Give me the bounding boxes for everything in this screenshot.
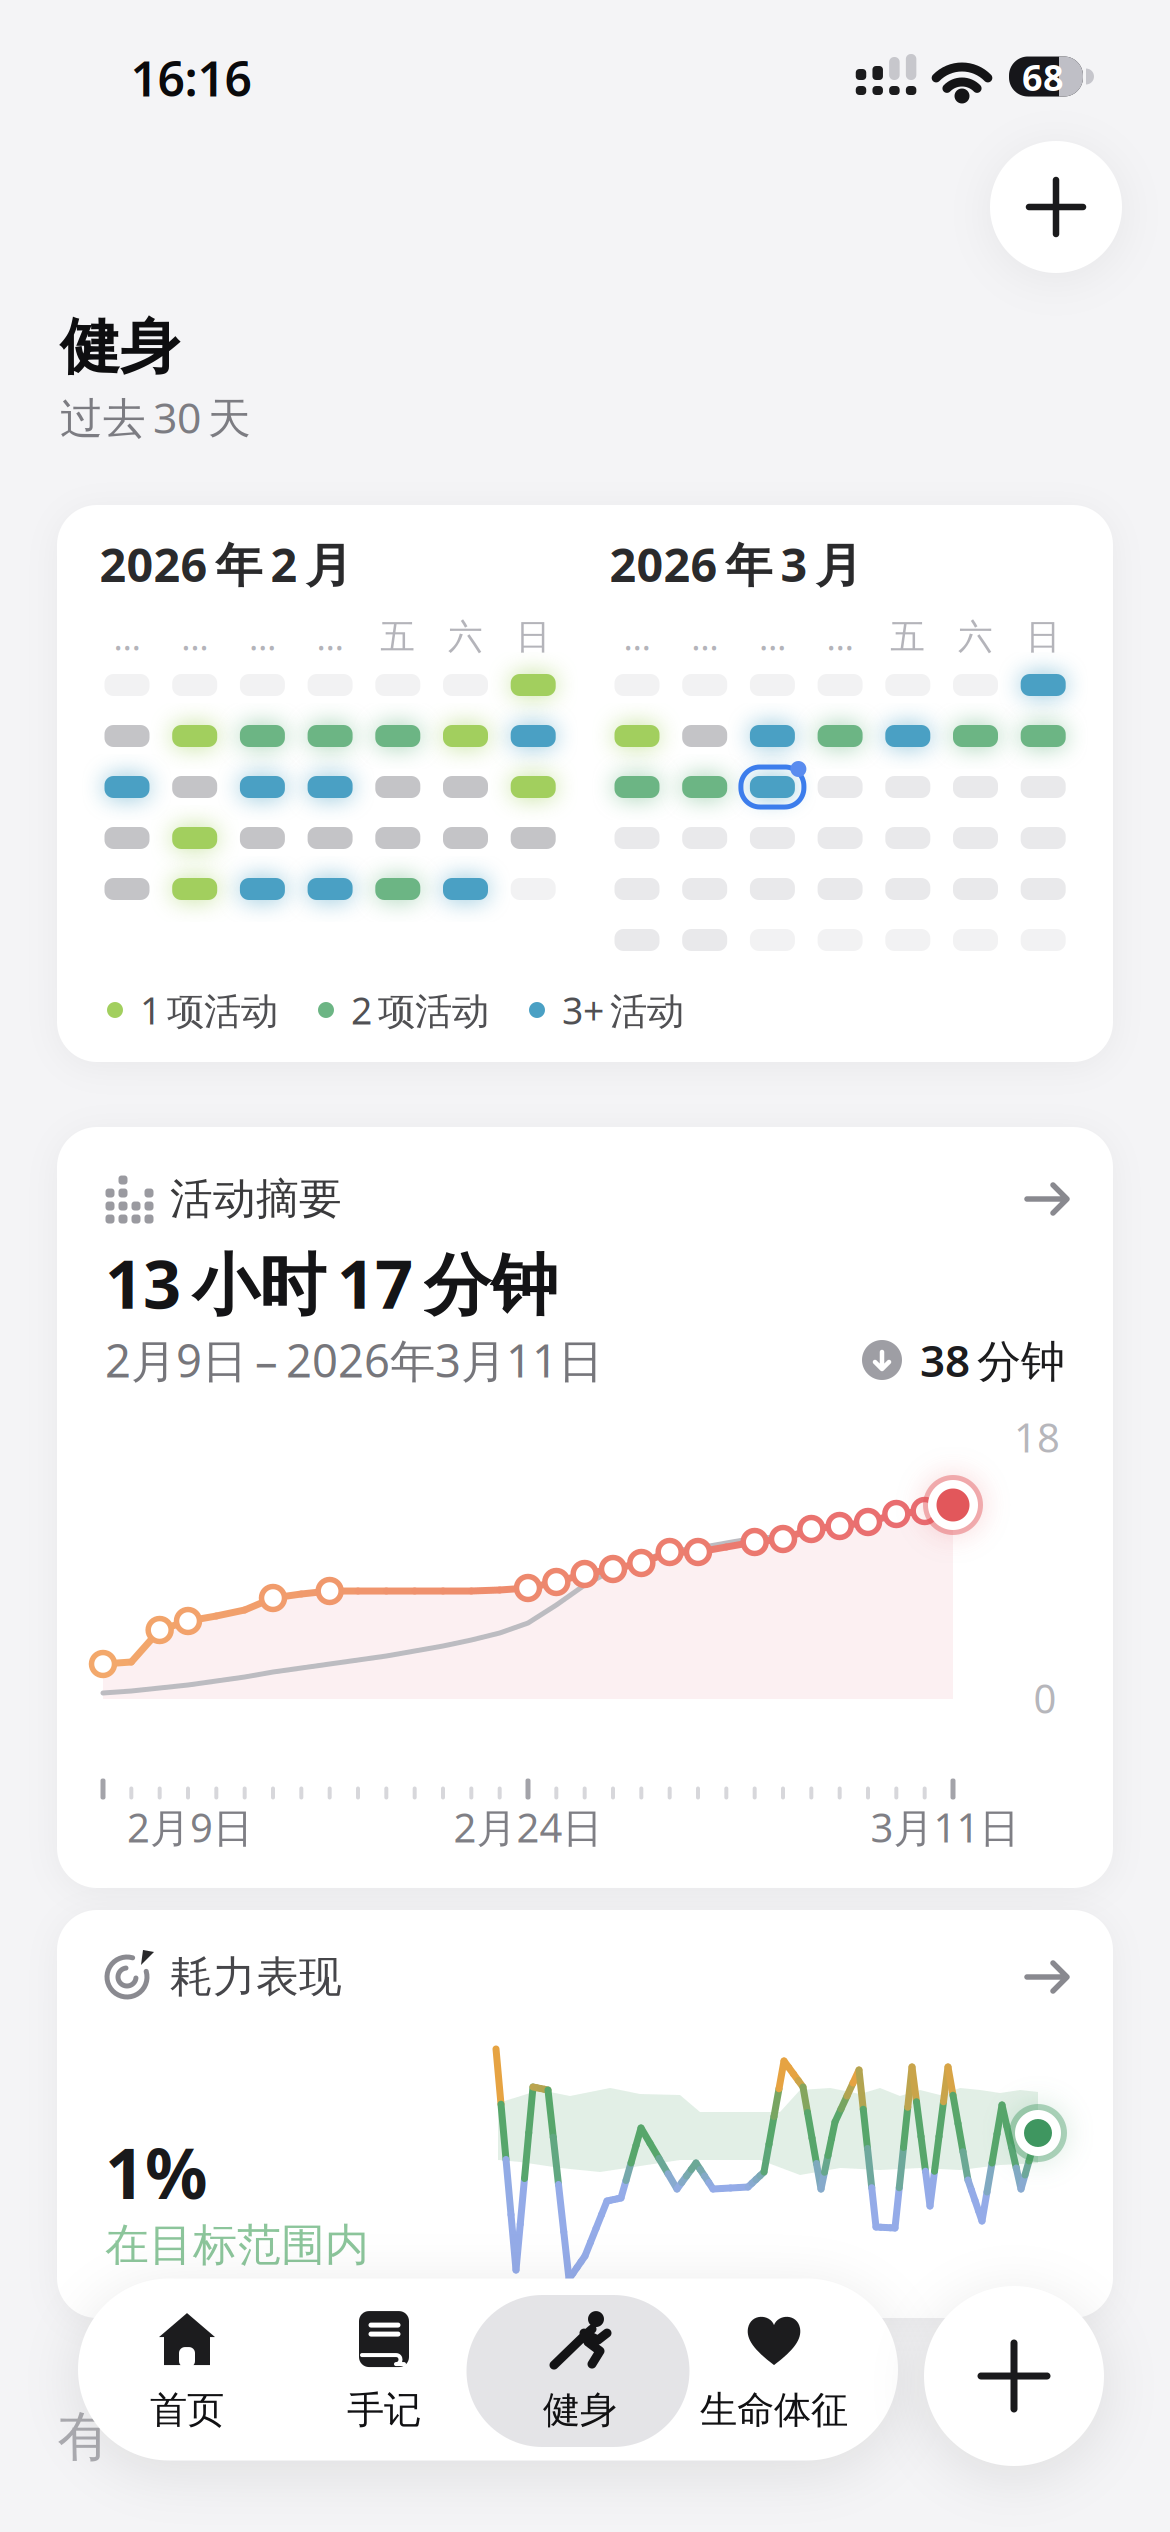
staticText: 68 [1022,53,1064,101]
staticText: 38 分钟 [920,1331,1065,1389]
staticText: … [759,614,786,660]
button[interactable] [924,2286,1104,2466]
staticText: 3+ 活动 [562,985,684,1035]
button[interactable] [990,141,1122,273]
staticText: 2月24日 [453,1800,602,1853]
staticText: 2月9日 [127,1800,253,1853]
staticText: 2026 年 2 月 [99,533,352,595]
button[interactable]: 生命体征 [659,2286,889,2458]
staticText: 六 [448,616,483,658]
staticText: 2026 年 3 月 [609,533,862,595]
staticText: 六 [958,616,993,658]
staticText: … [691,614,718,660]
staticText: … [623,614,650,660]
staticText: 健身 [543,2387,617,2433]
staticText: 在目标范围内 [105,2218,369,2272]
staticText: 2 项活动 [351,985,489,1035]
staticText: 耗力表现 [170,1951,342,2003]
staticText: 16:16 [130,46,251,110]
staticText: 五 [380,616,415,658]
staticText: 活动摘要 [170,1173,342,1225]
staticText: … [249,614,276,660]
staticText: 生命体征 [700,2387,848,2433]
staticText: 18 [1014,1410,1060,1463]
staticText: 健身 [60,310,180,384]
staticText: 日 [516,616,551,658]
button[interactable]: 首页 [72,2286,302,2458]
staticText: 过去 30 天 [60,389,251,445]
staticText: 1% [105,2126,208,2218]
staticText: 1 项活动 [140,985,278,1035]
button[interactable]: 健身 [465,2286,695,2458]
staticText: 日 [1026,616,1061,658]
staticText: … [827,614,854,660]
staticText: 2月9日 – 2026年3月11日 [105,1330,603,1390]
button[interactable]: 手记 [269,2286,499,2458]
button[interactable]: 耗力表现 [57,1910,1113,2318]
button[interactable]: 活动摘要 [57,1127,1113,1888]
staticText: 有 [57,2404,110,2470]
staticText: 0 [1033,1671,1056,1724]
staticText: 手记 [347,2387,421,2433]
staticText: 首页 [150,2387,224,2433]
staticText: … [317,614,344,660]
staticText: 13 小时 17 分钟 [105,1239,558,1327]
staticText: … [181,614,208,660]
button[interactable]: 2026 年 2 月 [57,505,1113,1062]
staticText: … [113,614,140,660]
staticText: 3月11日 [870,1800,1019,1853]
staticText: 五 [890,616,925,658]
